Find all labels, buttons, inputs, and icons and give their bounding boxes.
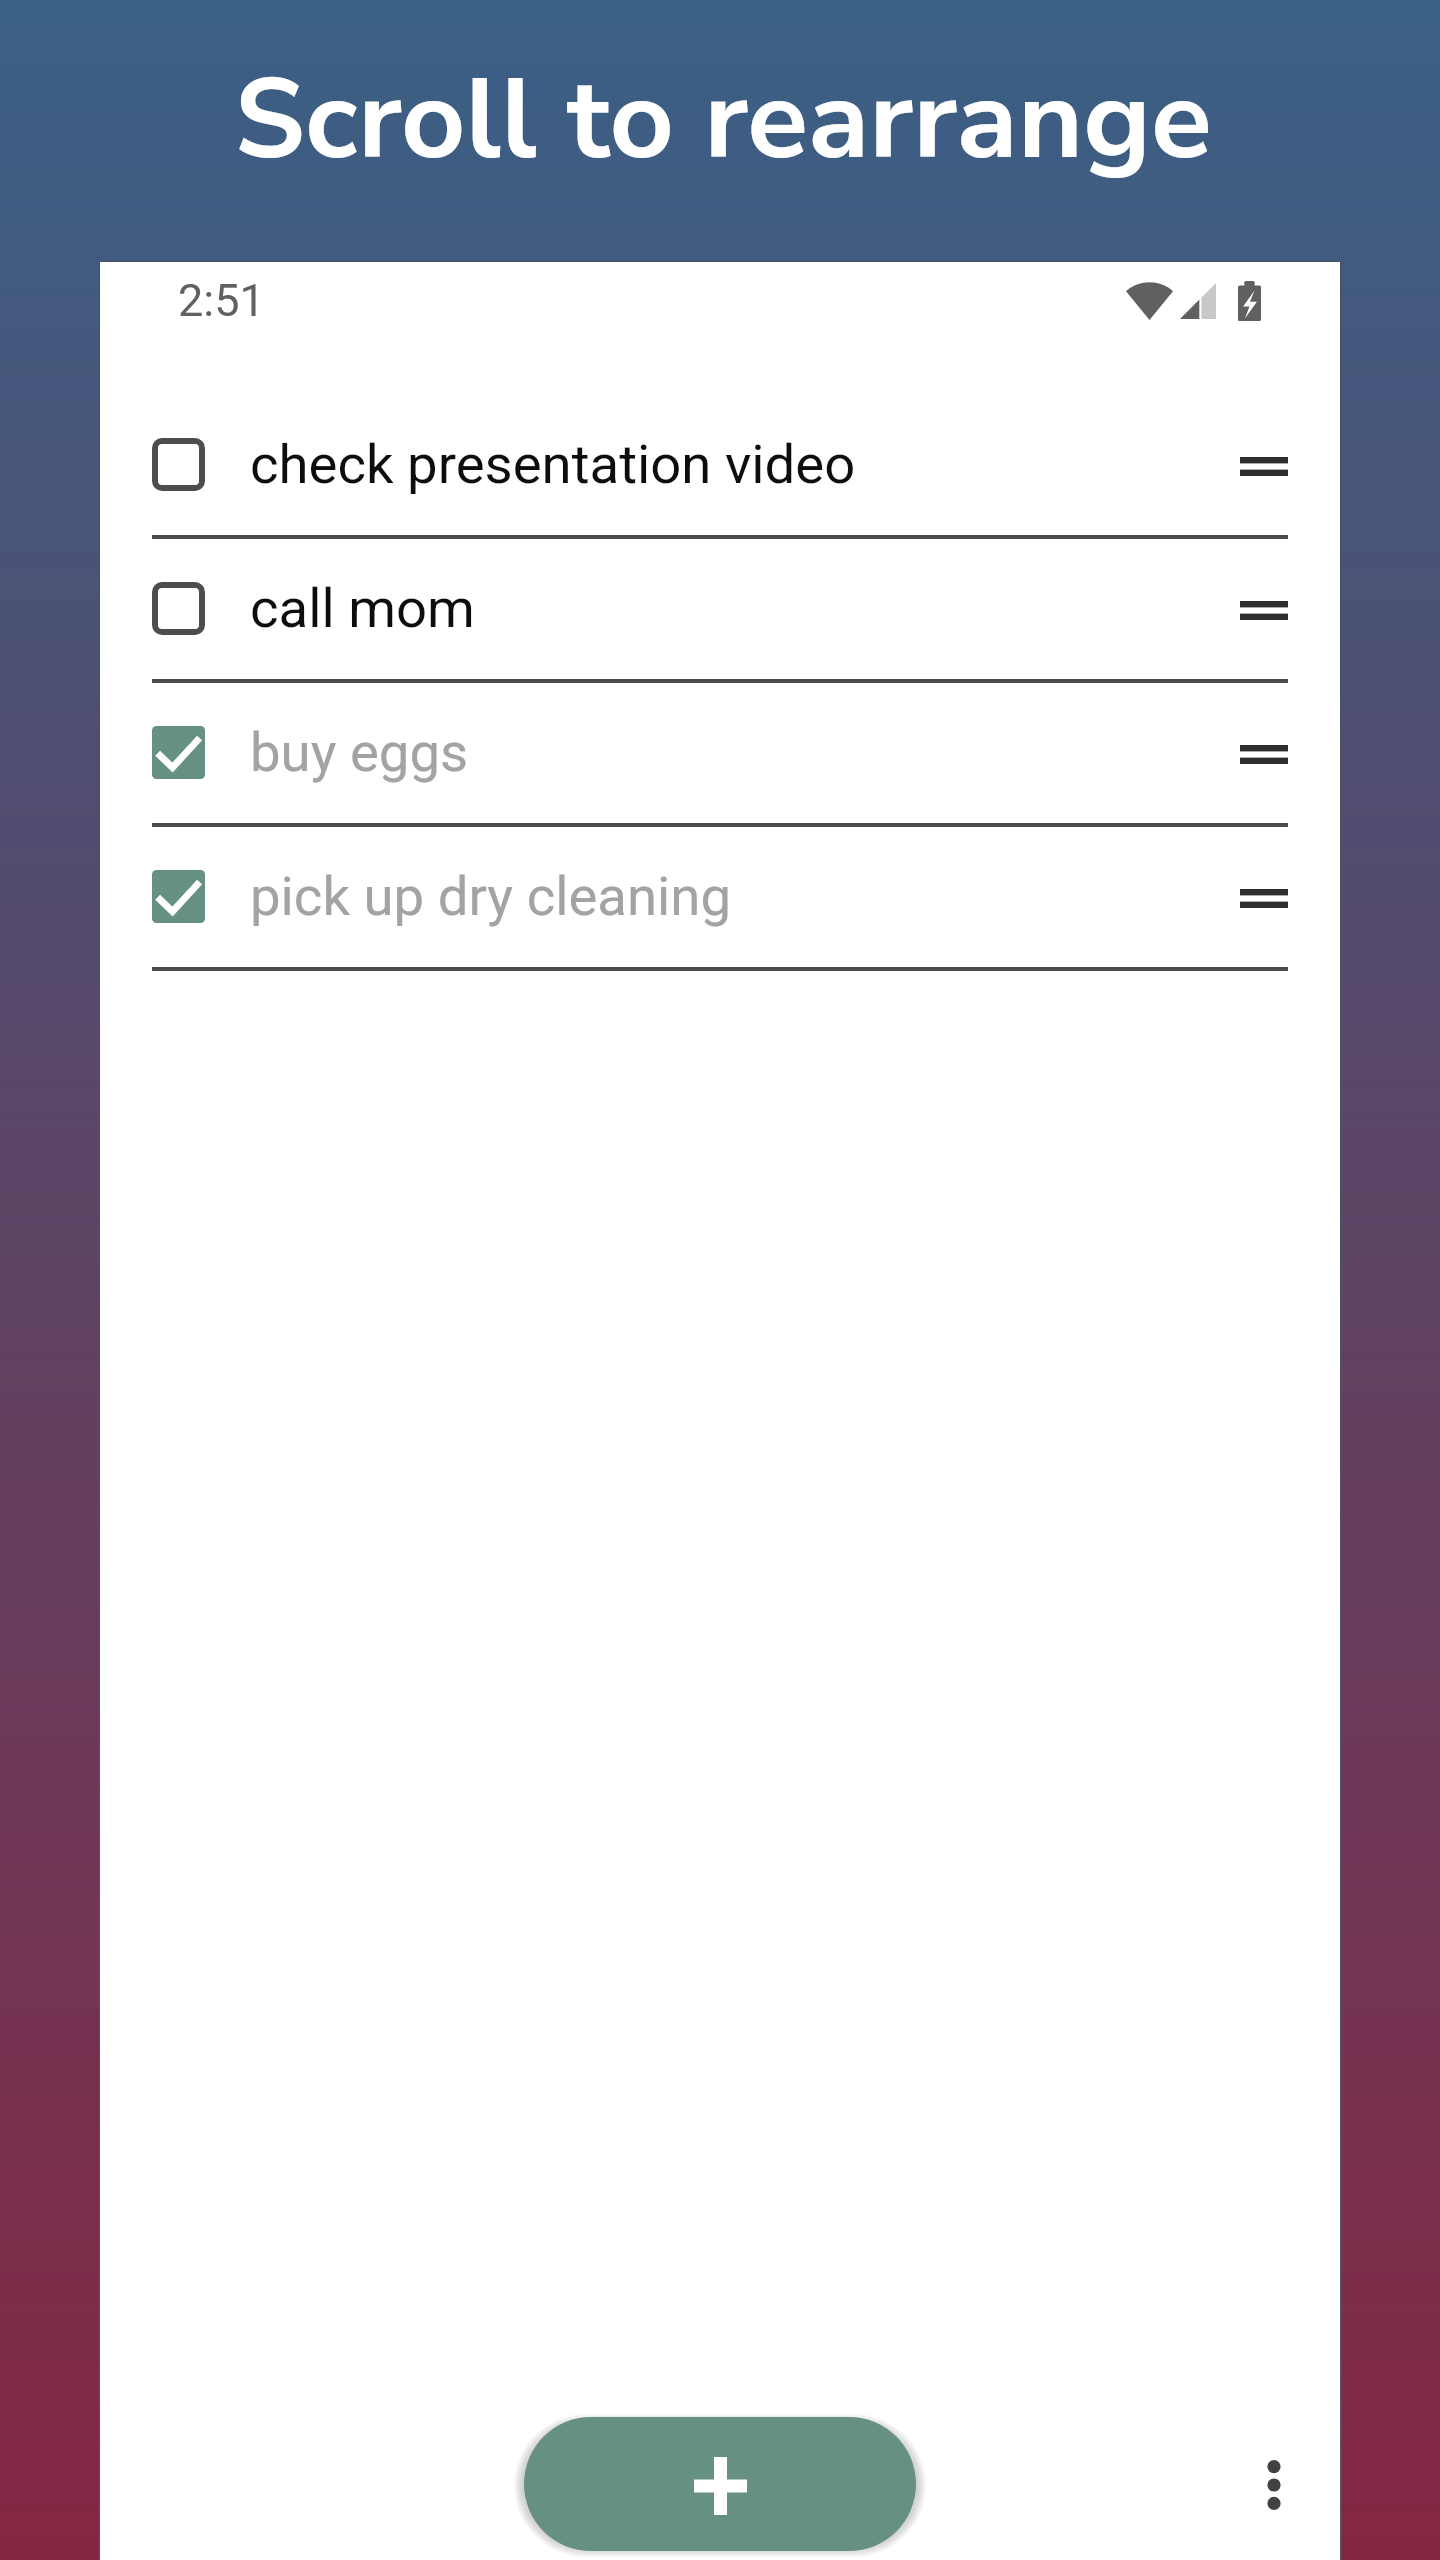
button[interactable]: Reorder xyxy=(1212,570,1288,646)
button[interactable]: Reorder xyxy=(1212,858,1288,934)
button[interactable]: More options xyxy=(1234,2445,1314,2525)
staticText: buy eggs xyxy=(250,720,1212,784)
button[interactable]: Add task xyxy=(524,2417,916,2551)
button[interactable]: pick up dry cleaning xyxy=(100,827,1340,971)
button[interactable]: Reorder xyxy=(1212,426,1288,502)
button[interactable]: Reorder xyxy=(1212,714,1288,790)
staticText: call mom xyxy=(250,576,1212,640)
button[interactable]: buy eggs xyxy=(100,683,1340,827)
button[interactable]: call mom xyxy=(100,539,1340,683)
staticText: check presentation video xyxy=(250,432,1212,496)
staticText: pick up dry cleaning xyxy=(250,864,1212,928)
staticText: 2:51 xyxy=(178,274,265,327)
button[interactable]: check presentation video xyxy=(100,395,1340,539)
staticText: Scroll to rearrange xyxy=(3,44,1440,197)
